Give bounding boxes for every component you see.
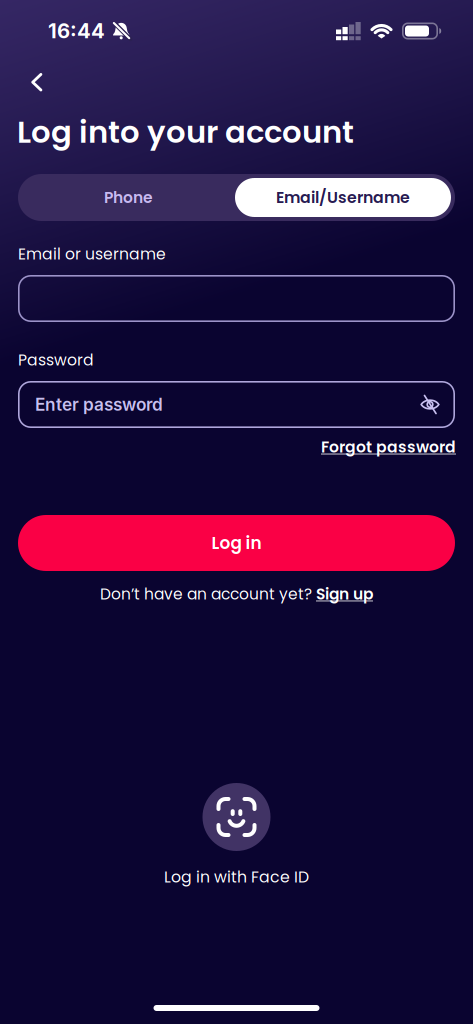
staticText: Don’t have an account yet? xyxy=(100,583,316,605)
staticText: Enter password xyxy=(35,394,163,415)
staticText: Email or username xyxy=(18,243,166,265)
button[interactable]: Phone xyxy=(22,187,235,208)
staticText: Log in with Face ID xyxy=(164,866,309,888)
staticText: Forgot password xyxy=(321,436,456,458)
staticText: Password xyxy=(18,349,94,371)
button[interactable]: Email/Username xyxy=(235,178,451,217)
staticText: Phone xyxy=(104,187,153,208)
button[interactable]: Show password xyxy=(420,395,455,413)
button[interactable]: Forgot password xyxy=(321,436,473,458)
staticText: Sign up xyxy=(316,583,373,605)
staticText: 16:44 xyxy=(48,19,105,43)
staticText: Email/Username xyxy=(276,186,410,208)
textField[interactable]: Email or username xyxy=(35,283,455,313)
button[interactable]: Log in xyxy=(18,515,455,571)
button[interactable]: Log in with Face ID xyxy=(164,783,309,888)
button[interactable]: Back xyxy=(0,73,44,91)
secureTextField[interactable]: Enter password xyxy=(35,389,455,419)
staticText: Enter password xyxy=(35,389,202,419)
staticText: Log in xyxy=(211,531,261,555)
staticText: Log into your account xyxy=(17,110,354,153)
button[interactable]: Sign up xyxy=(316,583,373,605)
